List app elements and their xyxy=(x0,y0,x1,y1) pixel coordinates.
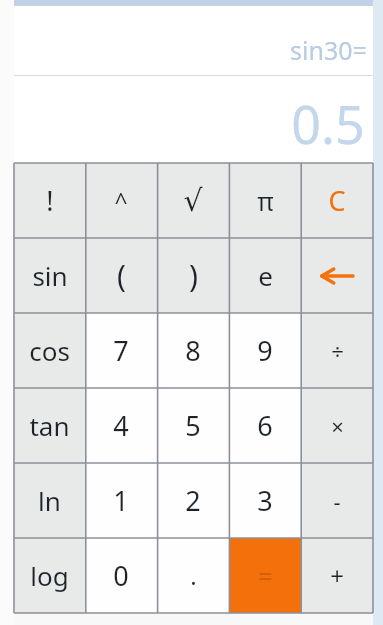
staticText: 0.5 xyxy=(291,88,365,159)
staticText: 7 xyxy=(113,332,129,369)
button[interactable]: π xyxy=(229,163,301,238)
button[interactable]: ÷ xyxy=(301,313,373,388)
staticText: ÷ xyxy=(331,336,344,366)
staticText: - xyxy=(333,486,341,516)
staticText: . xyxy=(190,559,197,592)
staticText: ^ xyxy=(114,185,128,216)
button[interactable]: 5 xyxy=(157,388,229,463)
button[interactable]: ! xyxy=(14,163,85,238)
button[interactable]: - xyxy=(301,463,373,538)
button[interactable]: Backspace xyxy=(301,238,373,313)
button[interactable]: 8 xyxy=(157,313,229,388)
staticText: ) xyxy=(189,255,198,296)
staticText: 0 xyxy=(113,557,129,594)
button[interactable]: e xyxy=(229,238,301,313)
staticText: e xyxy=(258,258,273,293)
button[interactable]: . xyxy=(157,538,229,613)
staticText: log xyxy=(30,558,69,593)
staticText: 8 xyxy=(185,332,201,369)
staticText: 3 xyxy=(257,482,273,519)
button[interactable]: 4 xyxy=(85,388,157,463)
button[interactable]: ) xyxy=(157,238,229,313)
staticText: 5 xyxy=(185,407,201,444)
button[interactable]: ( xyxy=(85,238,157,313)
button[interactable]: sin xyxy=(14,238,85,313)
button[interactable]: cos xyxy=(14,313,85,388)
button[interactable]: 9 xyxy=(229,313,301,388)
button[interactable]: 6 xyxy=(229,388,301,463)
staticText: × xyxy=(331,411,344,441)
button[interactable]: C xyxy=(301,163,373,238)
button[interactable]: 1 xyxy=(85,463,157,538)
button[interactable]: × xyxy=(301,388,373,463)
staticText: ( xyxy=(117,255,126,296)
button[interactable]: 7 xyxy=(85,313,157,388)
staticText: 9 xyxy=(257,332,273,369)
staticText: ln xyxy=(38,483,61,518)
staticText: + xyxy=(330,559,344,592)
staticText: C xyxy=(328,182,346,219)
button[interactable]: log xyxy=(14,538,85,613)
staticText: = xyxy=(258,558,273,593)
button[interactable]: + xyxy=(301,538,373,613)
button[interactable]: 0 xyxy=(85,538,157,613)
staticText: tan xyxy=(29,408,70,443)
staticText: π xyxy=(257,184,274,218)
button[interactable]: √ xyxy=(157,163,229,238)
button[interactable]: = xyxy=(229,538,301,613)
button[interactable]: 3 xyxy=(229,463,301,538)
button[interactable]: ln xyxy=(14,463,85,538)
staticText: √ xyxy=(183,183,203,218)
staticText: 1 xyxy=(113,482,129,519)
button[interactable]: tan xyxy=(14,388,85,463)
button[interactable]: 2 xyxy=(157,463,229,538)
staticText: cos xyxy=(29,333,70,368)
staticText: 6 xyxy=(257,407,273,444)
staticText: ! xyxy=(46,182,54,219)
staticText: 4 xyxy=(113,407,129,444)
button[interactable]: ^ xyxy=(85,163,157,238)
staticText: sin30= xyxy=(290,33,367,67)
staticText: 2 xyxy=(185,482,201,519)
staticText: sin xyxy=(32,258,68,293)
